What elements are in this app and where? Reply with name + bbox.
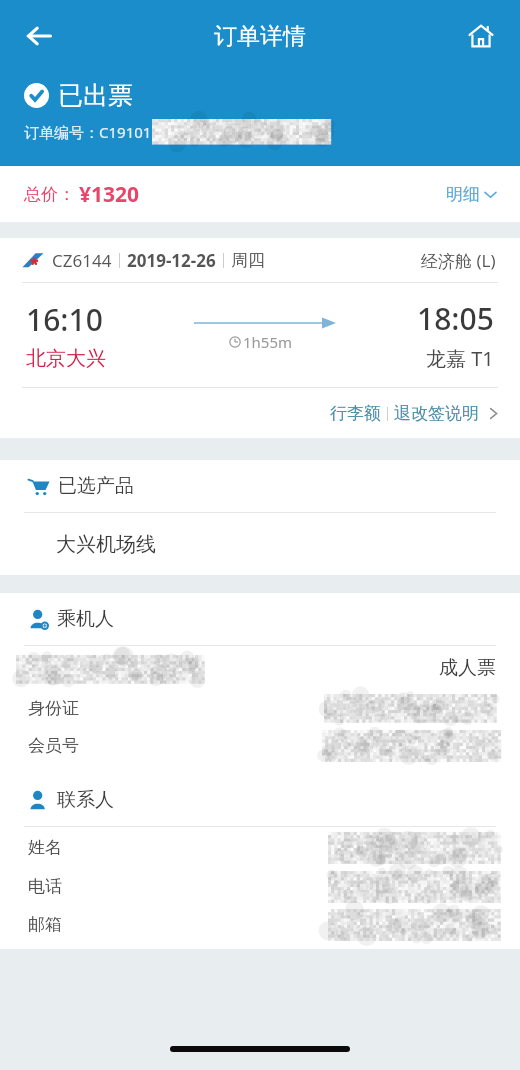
staticText: 周四 [231, 250, 265, 271]
button[interactable]: 明细 [446, 184, 496, 205]
staticText: 邮箱 [28, 914, 62, 935]
staticText: 18:05 [417, 298, 494, 339]
staticText: 退改签说明 [394, 403, 479, 424]
staticText: 总价： [24, 184, 75, 205]
staticText: 16:10 [26, 299, 103, 340]
staticText: 会员号 [28, 735, 79, 756]
staticText: 明细 [446, 184, 480, 205]
staticText: 订单编号：C19101 [24, 122, 152, 142]
staticText: 姓名 [28, 837, 62, 858]
staticText: 龙嘉 T1 [426, 345, 494, 372]
staticText: 联系人 [57, 788, 114, 812]
button[interactable]: Back [0, 0, 78, 72]
staticText: 订单详情 [78, 22, 442, 51]
staticText: 大兴机场线 [56, 532, 156, 557]
staticText: 2019-12-26 [127, 249, 216, 272]
staticText: 已选产品 [58, 474, 134, 498]
staticText: 电话 [28, 876, 62, 897]
staticText: ¥1320 [79, 180, 140, 209]
staticText: 成人票 [439, 656, 496, 680]
staticText: 已出票 [58, 80, 133, 111]
staticText: 行李额 [330, 403, 381, 424]
staticText: 经济舱 (L) [421, 249, 496, 272]
staticText: 北京大兴 [26, 346, 106, 371]
staticText: CZ6144 [52, 249, 112, 272]
staticText: 身份证 [28, 698, 79, 719]
button[interactable]: 行李额 [330, 403, 500, 424]
staticText: 1h55m [243, 332, 293, 352]
button[interactable]: Home [442, 0, 520, 72]
staticText: 乘机人 [57, 607, 114, 631]
